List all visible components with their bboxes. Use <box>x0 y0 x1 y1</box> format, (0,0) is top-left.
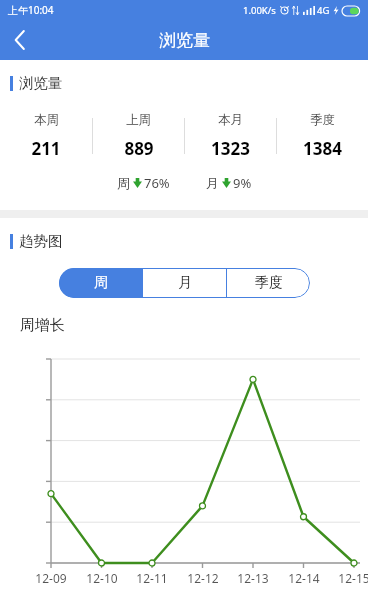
staticText: 周 <box>117 175 130 191</box>
button[interactable]: 本周 <box>0 108 92 164</box>
staticText: 周 <box>94 274 108 292</box>
staticText: 1384 <box>303 137 342 160</box>
staticText: 4G <box>317 4 330 17</box>
staticText: 12-13 <box>237 570 269 586</box>
staticText: 76% <box>144 174 170 192</box>
staticText: 上周 <box>126 112 151 128</box>
staticText: 1.00K/s <box>243 4 276 17</box>
staticText: 本周 <box>34 112 59 128</box>
staticText: 12-09 <box>35 570 67 586</box>
button[interactable]: 周 <box>59 268 142 298</box>
staticText: 12-10 <box>86 570 118 586</box>
staticText: 889 <box>124 137 154 160</box>
button[interactable]: 季度 <box>277 108 368 164</box>
button[interactable]: 上周 <box>93 108 184 164</box>
staticText: 月 <box>178 274 192 292</box>
staticText: 本月 <box>218 112 243 128</box>
staticText: 12-15 <box>338 570 368 586</box>
staticText: 浏览量 <box>19 74 63 92</box>
staticText: 浏览量 <box>159 30 210 51</box>
staticText: 12-12 <box>187 570 219 586</box>
button[interactable]: 季度 <box>227 268 310 298</box>
staticText: 周增长 <box>20 316 65 335</box>
staticText: 趋势图 <box>19 232 63 250</box>
button[interactable]: Back <box>0 20 40 60</box>
staticText: 季度 <box>310 112 335 128</box>
staticText: 季度 <box>255 274 283 292</box>
staticText: 1323 <box>211 137 250 160</box>
staticText: 上午10:04 <box>8 3 54 17</box>
button[interactable]: 本月 <box>185 108 276 164</box>
staticText: 12-14 <box>288 570 320 586</box>
staticText: 9% <box>233 174 252 192</box>
staticText: 12-11 <box>136 570 168 586</box>
staticText: 211 <box>31 137 61 160</box>
staticText: 月 <box>206 175 219 191</box>
button[interactable]: 月 <box>143 268 226 298</box>
